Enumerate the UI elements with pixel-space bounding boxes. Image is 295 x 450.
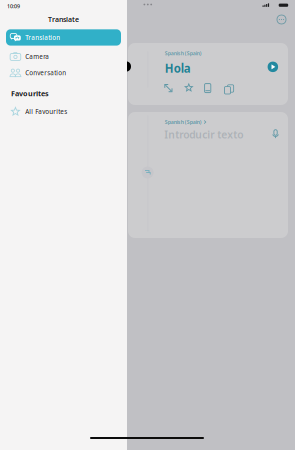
staticText: Favourites	[11, 89, 49, 98]
button[interactable]: All Favourites	[6, 103, 121, 120]
button[interactable]: Open in dictionary	[205, 83, 211, 93]
button[interactable]: Copy translation	[222, 83, 232, 93]
staticText: Introducir texto	[164, 127, 243, 141]
button[interactable]: Play pronunciation	[268, 62, 278, 72]
staticText: Spanish (Spain)	[165, 50, 202, 57]
staticText: 10:09	[7, 3, 20, 10]
staticText: All Favourites	[25, 107, 67, 116]
staticText: Conversation	[25, 68, 66, 77]
staticText: Translation	[25, 33, 60, 42]
button[interactable]: Conversation	[6, 65, 121, 81]
staticText: Spanish (Spain)	[165, 118, 202, 126]
button[interactable]: Camera	[6, 48, 121, 65]
button[interactable]: Dictate text	[272, 129, 279, 138]
button[interactable]: Swap languages	[142, 166, 154, 178]
button[interactable]: More options	[277, 15, 286, 24]
button[interactable]: Expand translation	[164, 83, 173, 93]
staticText: Camera	[25, 52, 49, 61]
button[interactable]: Translation	[6, 29, 121, 46]
staticText: Hola	[165, 60, 191, 76]
button[interactable]: Add to favourites	[184, 83, 193, 92]
staticText: Translate	[48, 14, 79, 24]
